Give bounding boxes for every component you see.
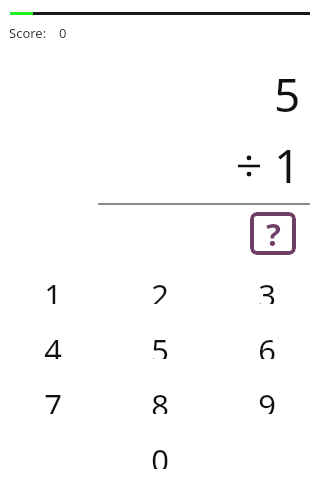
button[interactable]: 3 (213, 268, 320, 310)
button[interactable]: 6 (213, 323, 320, 365)
button[interactable]: 8 (106, 378, 213, 420)
button[interactable]: 4 (0, 323, 106, 365)
button[interactable]: 9 (213, 378, 320, 420)
staticText: 0 (59, 24, 67, 42)
button[interactable]: 2 (106, 268, 213, 310)
staticText: Score: (9, 24, 47, 42)
staticText: 5 (274, 63, 301, 126)
button[interactable]: 5 (106, 323, 213, 365)
staticText: 8 (151, 384, 169, 414)
staticText: 1 (274, 134, 301, 197)
staticText: 6 (258, 329, 276, 359)
staticText: 4 (44, 329, 62, 359)
staticText: 5 (151, 329, 169, 359)
staticText: 9 (258, 384, 276, 414)
staticText: ? (266, 213, 281, 255)
staticText: 0 (151, 439, 169, 469)
staticText: 3 (258, 274, 276, 304)
button[interactable]: 7 (0, 378, 106, 420)
staticText: 7 (44, 384, 62, 414)
button[interactable]: 1 (0, 268, 106, 310)
button[interactable]: Answer (250, 212, 296, 255)
button[interactable]: 0 (106, 433, 213, 475)
staticText: 1 (44, 274, 62, 304)
staticText: 2 (151, 274, 169, 304)
